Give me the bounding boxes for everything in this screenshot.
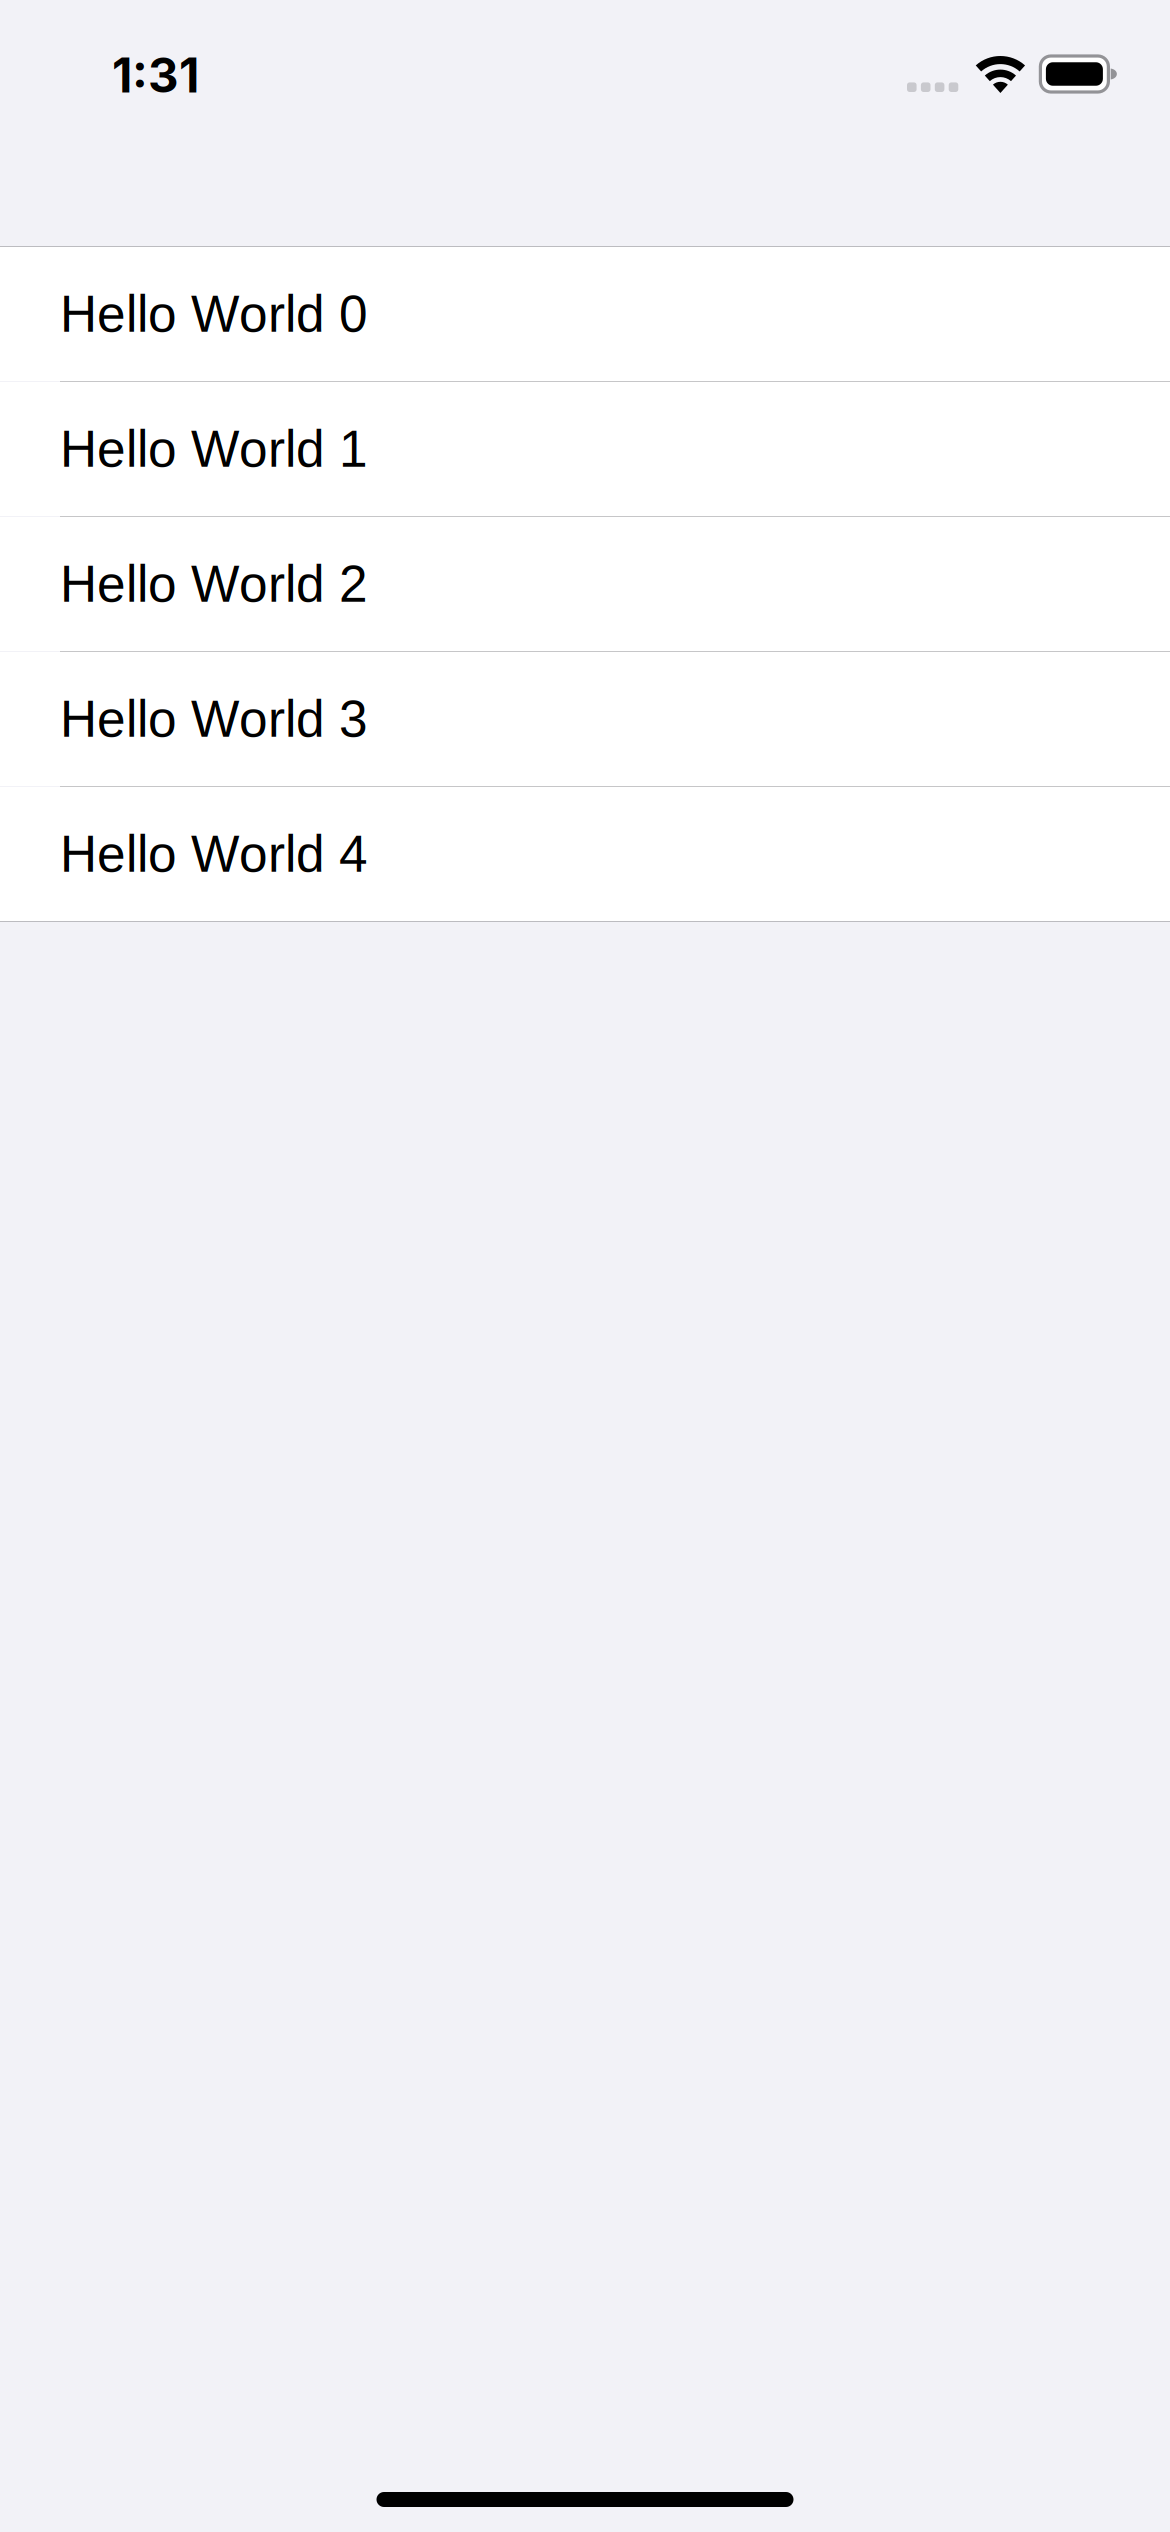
button[interactable]: Hello World 3	[0, 652, 1170, 786]
staticText: Hello World 4	[60, 825, 368, 883]
staticText: Hello World 3	[60, 690, 368, 748]
staticText: Hello World 0	[60, 285, 368, 343]
button[interactable]: Hello World 2	[0, 517, 1170, 651]
staticText: Hello World 1	[60, 420, 368, 478]
staticText: 1:31	[112, 47, 199, 104]
button[interactable]: Hello World 4	[0, 787, 1170, 921]
staticText: Hello World 2	[60, 555, 368, 613]
button[interactable]: Hello World 1	[0, 382, 1170, 516]
button[interactable]: Hello World 0	[0, 247, 1170, 381]
